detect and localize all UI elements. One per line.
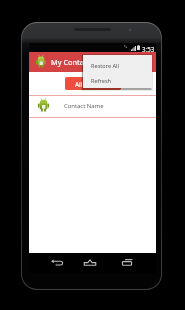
button[interactable]: Contact Name (29, 95, 156, 117)
staticText: My Contacts (51, 57, 94, 67)
staticText: Restore All (91, 62, 119, 70)
button[interactable]: Back (51, 256, 63, 270)
staticText: Contact Name (64, 102, 104, 110)
button[interactable]: Restore All (83, 58, 152, 73)
button[interactable]: Recents (121, 256, 133, 270)
staticText: 3:53 (142, 45, 155, 53)
staticText: Refresh (91, 77, 112, 85)
button[interactable]: All (65, 77, 121, 90)
button[interactable]: Refresh (83, 73, 152, 88)
button[interactable]: Home (84, 256, 96, 270)
staticText: All (75, 80, 83, 89)
